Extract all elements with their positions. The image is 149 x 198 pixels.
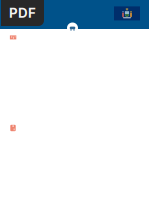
button[interactable]: PDF	[1, 0, 44, 26]
button[interactable]: State seal	[67, 22, 78, 33]
button[interactable]: New York State flag	[114, 6, 140, 20]
staticText: PDF	[9, 5, 36, 21]
